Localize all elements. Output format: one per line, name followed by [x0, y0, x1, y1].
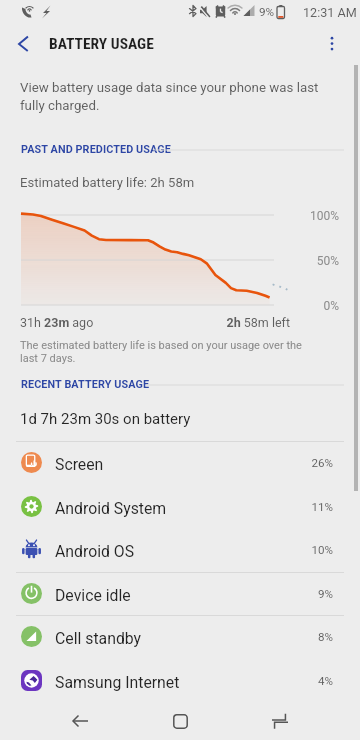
staticText: Samsung Internet: [55, 673, 180, 692]
button[interactable]: More options: [318, 24, 346, 64]
staticText: 9%: [259, 5, 275, 19]
staticText: 10%: [283, 543, 333, 557]
staticText: 50%: [295, 254, 339, 268]
button[interactable]: Cell standby: [0, 615, 360, 659]
staticText: The estimated battery life is based on y…: [20, 339, 318, 364]
staticText: 31h 23m ago: [20, 315, 94, 330]
staticText: Android System: [55, 499, 167, 518]
staticText: PAST AND PREDICTED USAGE: [21, 143, 171, 156]
button[interactable]: Screen: [0, 441, 360, 485]
staticText: 2h 58m left: [170, 315, 290, 330]
button[interactable]: Navigate up: [4, 24, 44, 64]
staticText: 11%: [283, 500, 333, 514]
staticText: 4%: [283, 674, 333, 688]
button[interactable]: Device idle: [0, 572, 360, 616]
button[interactable]: Android OS: [0, 528, 360, 572]
staticText: Estimated battery life: 2h 58m: [20, 175, 195, 190]
staticText: 1d 7h 23m 30s on battery: [20, 410, 191, 428]
staticText: BATTERY USAGE: [49, 35, 154, 53]
button[interactable]: Home: [150, 702, 210, 740]
button[interactable]: Back: [50, 702, 110, 740]
staticText: View battery usage data since your phone…: [20, 80, 322, 113]
staticText: Cell standby: [55, 629, 142, 648]
button[interactable]: Android System: [0, 485, 360, 529]
staticText: 100%: [295, 209, 339, 223]
staticText: 8%: [283, 630, 333, 644]
staticText: Screen: [55, 455, 104, 474]
staticText: 9%: [283, 587, 333, 601]
staticText: Device idle: [55, 586, 131, 605]
staticText: RECENT BATTERY USAGE: [21, 378, 150, 391]
staticText: Android OS: [55, 542, 135, 561]
staticText: 12:31 AM: [303, 5, 357, 20]
staticText: 0%: [295, 299, 339, 313]
button[interactable]: Samsung Internet: [0, 659, 360, 703]
button[interactable]: Recent apps: [250, 702, 310, 740]
staticText: 26%: [283, 456, 333, 470]
